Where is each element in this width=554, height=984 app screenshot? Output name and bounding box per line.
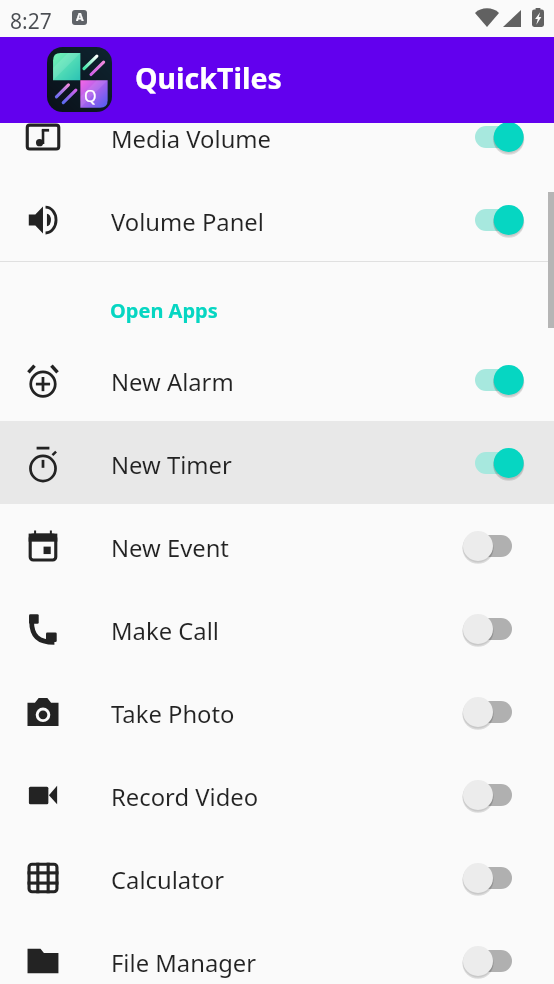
button[interactable]: File Manager: [0, 919, 554, 984]
button[interactable]: Volume Panel: [0, 178, 554, 261]
button[interactable]: New Alarm: [0, 338, 554, 421]
staticText: New Event: [111, 532, 462, 564]
staticText: Calculator: [111, 864, 462, 896]
staticText: Q: [84, 85, 97, 107]
staticText: New Timer: [111, 449, 462, 481]
button[interactable]: Media Volume: [0, 123, 554, 178]
button[interactable]: Take Photo: [0, 670, 554, 753]
button[interactable]: New Timer: [0, 421, 554, 504]
staticText: Volume Panel: [111, 206, 462, 238]
staticText: A: [76, 10, 84, 24]
staticText: Media Volume: [111, 123, 462, 155]
staticText: QuickTiles: [135, 59, 282, 98]
staticText: 8:27: [10, 7, 52, 36]
staticText: Open Apps: [110, 297, 218, 324]
button[interactable]: Make Call: [0, 587, 554, 670]
button[interactable]: New Event: [0, 504, 554, 587]
staticText: File Manager: [111, 947, 462, 979]
button[interactable]: Record Video: [0, 753, 554, 836]
staticText: Record Video: [111, 781, 462, 813]
button[interactable]: Calculator: [0, 836, 554, 919]
staticText: New Alarm: [111, 366, 462, 398]
staticText: Take Photo: [111, 698, 462, 730]
staticText: Make Call: [111, 615, 462, 647]
